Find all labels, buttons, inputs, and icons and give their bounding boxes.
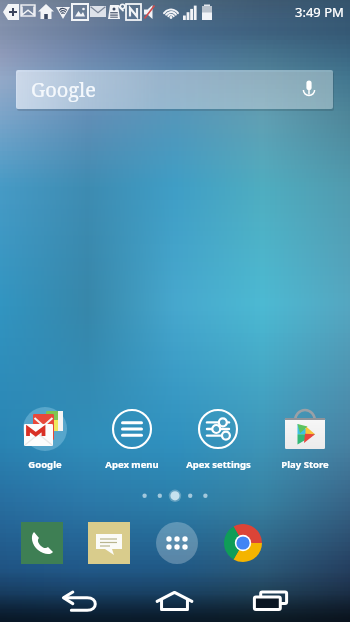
staticText: 3:49 PM [295,3,344,21]
staticText: Google [28,458,62,471]
button[interactable]: Apex settings [176,405,260,471]
button[interactable]: Messaging [81,515,136,570]
button[interactable]: Home [142,583,207,619]
staticText: Apex menu [105,458,159,471]
button[interactable]: Apex menu [90,405,174,471]
staticText: Google [31,76,97,103]
button[interactable]: Phone [14,515,69,570]
button[interactable]: Play Store [263,405,347,471]
button[interactable]: Recent apps [238,583,302,619]
button[interactable]: Google [16,70,333,109]
button[interactable]: Chrome [215,515,270,570]
staticText: Play Store [281,458,329,471]
button[interactable]: All apps [149,515,204,570]
staticText: Apex settings [186,458,251,471]
button[interactable]: Back [48,583,112,619]
button[interactable]: Google [3,405,87,471]
